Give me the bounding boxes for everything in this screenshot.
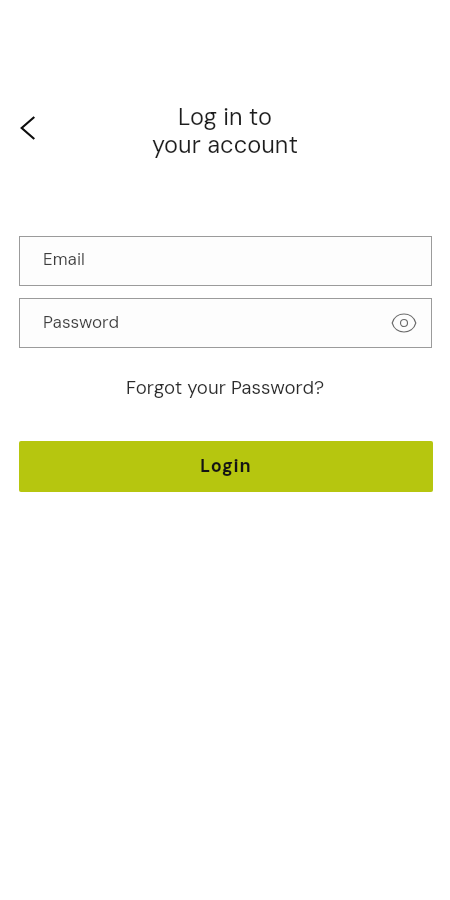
staticText: Log in to your account [152, 102, 298, 160]
button[interactable]: Password [19, 298, 432, 348]
staticText: Email [43, 248, 85, 270]
button[interactable]: Login [19, 441, 433, 492]
button[interactable]: Back [4, 104, 51, 151]
staticText: Password [43, 311, 119, 333]
staticText: Login [200, 454, 252, 477]
staticText: Forgot your Password? [126, 376, 325, 400]
button[interactable]: Show password [386, 305, 422, 341]
button[interactable]: Email [19, 236, 432, 286]
button[interactable]: Forgot your Password? [116, 372, 335, 404]
